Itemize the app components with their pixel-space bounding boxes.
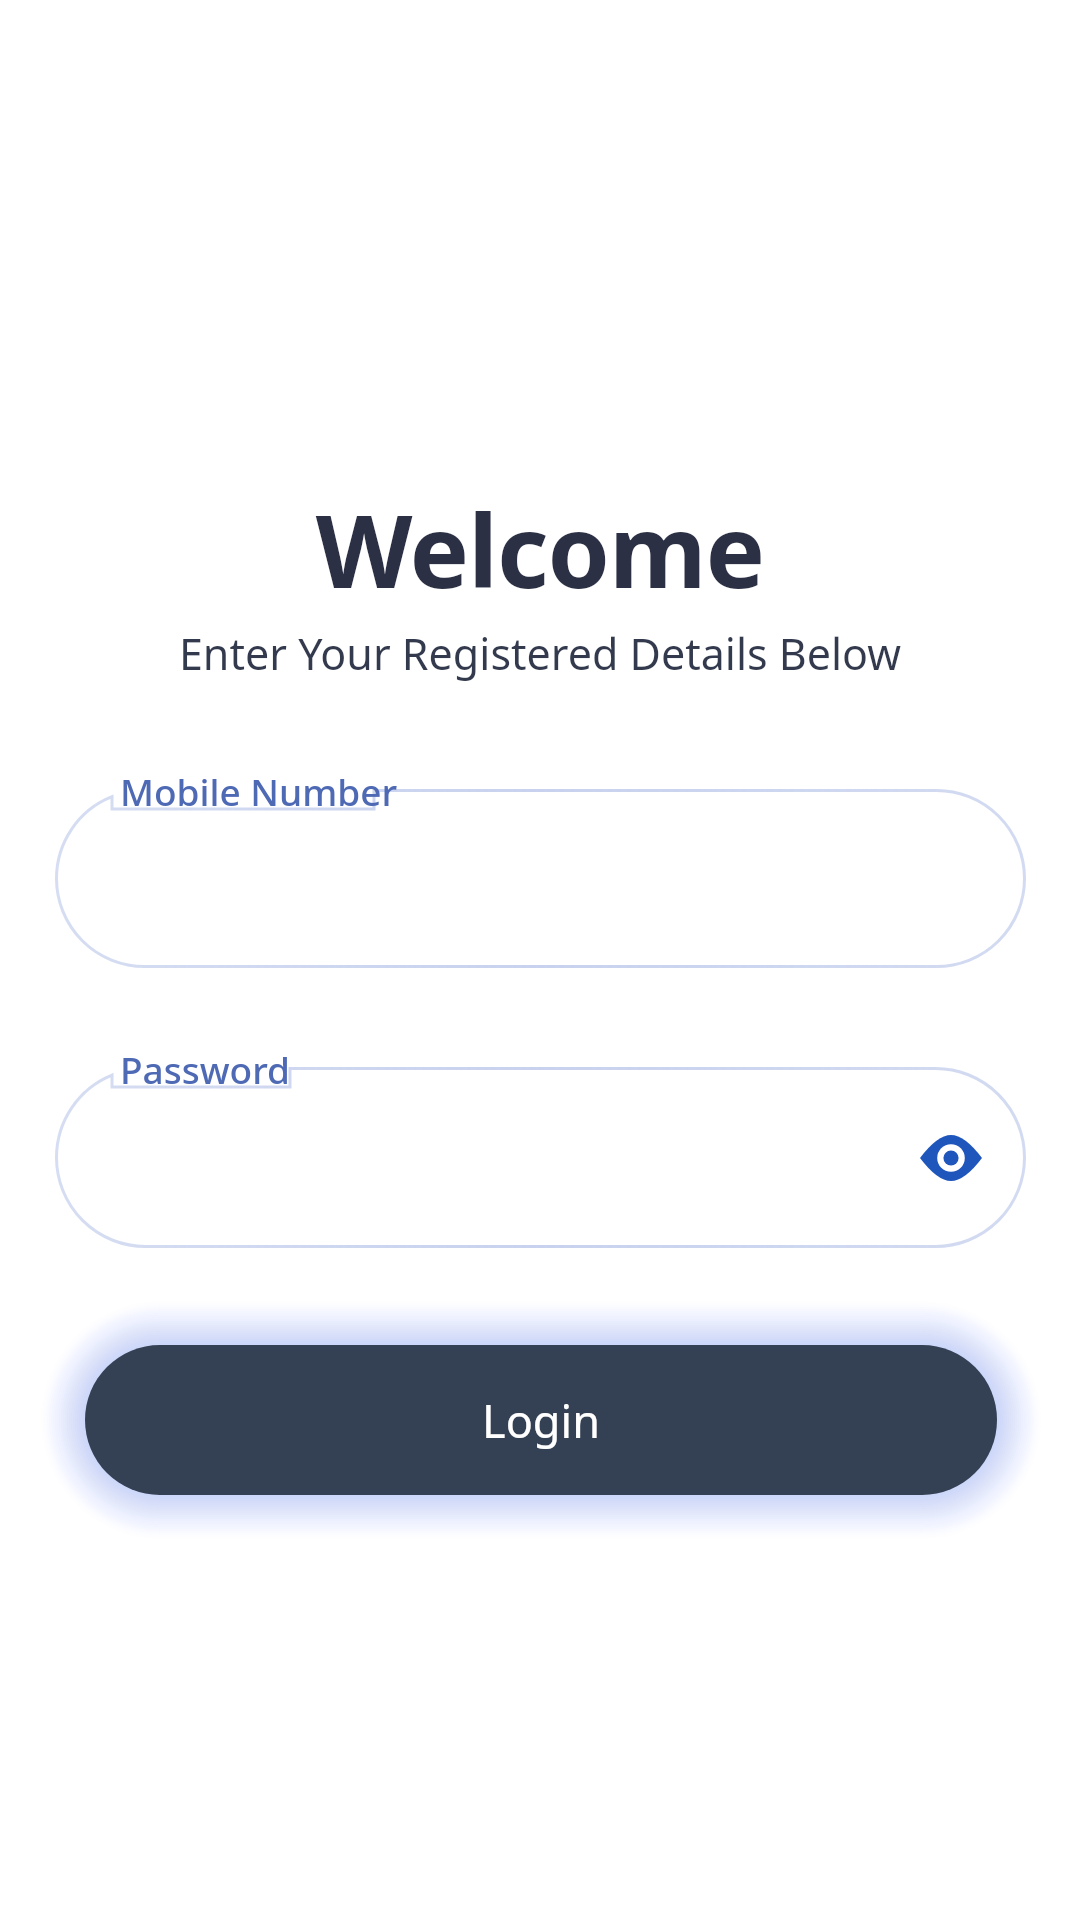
staticText: Login xyxy=(482,1390,600,1451)
button[interactable]: Login xyxy=(85,1345,997,1495)
staticText: Mobile Number xyxy=(120,766,398,816)
button[interactable]: Show password xyxy=(910,1117,992,1199)
staticText: Enter Your Registered Details Below xyxy=(0,624,1080,683)
staticText: Password xyxy=(120,1044,291,1094)
button[interactable]: Mobile Number xyxy=(55,789,1026,968)
button[interactable]: Password xyxy=(55,1067,1026,1248)
staticText: Welcome xyxy=(0,481,1080,617)
